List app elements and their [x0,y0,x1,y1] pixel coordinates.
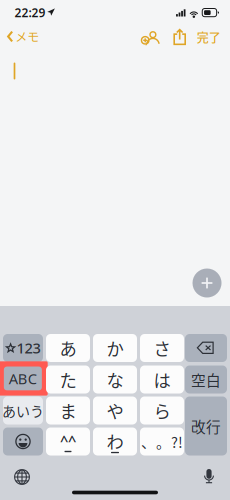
staticText: ABC [9,369,37,388]
button[interactable]: wa [93,427,137,455]
button[interactable]: Share [171,26,189,48]
button[interactable]: さ [140,334,184,362]
button[interactable]: Add attachment [190,266,224,300]
staticText: 、。?! [141,431,183,452]
button[interactable]: Emoji [3,427,43,455]
button[interactable]: あ [46,334,90,362]
staticText: 空白 [191,369,221,390]
staticText: は [153,367,170,392]
staticText: ^^ [60,431,76,450]
button[interactable]: Symbols and numbers [3,334,43,362]
staticText: か [106,335,123,361]
staticText: わ [106,428,123,453]
staticText: 22:29 [14,5,45,20]
button[interactable]: な [93,365,137,393]
staticText: な [106,367,123,392]
staticText: メモ [15,28,39,45]
button[interactable]: Kaomoji [46,427,90,455]
button[interactable]: は [140,365,184,393]
staticText: や [106,398,123,423]
staticText: あいう [2,400,44,421]
button[interactable]: ま [46,396,90,424]
button[interactable]: Delete [185,334,227,362]
staticText: 完了 [197,29,221,46]
staticText: あ [59,335,76,361]
button[interactable]: ABC keyboard [4,367,42,390]
staticText: ら [153,398,170,423]
staticText: 改行 [191,415,221,437]
button[interactable]: Next keyboard [7,464,37,490]
button[interactable]: 、。?! [140,427,184,455]
button[interactable]: メモ [1,23,45,50]
button[interactable]: や [93,396,137,424]
staticText: さ [153,335,170,361]
staticText: ま [59,398,76,423]
staticText: た [59,367,76,392]
button[interactable]: か [93,334,137,362]
button[interactable]: 空白 [185,365,227,393]
button[interactable]: Dictation [194,464,224,490]
button[interactable]: Add people [139,26,161,48]
button[interactable]: 完了 [190,24,228,51]
button[interactable]: 改行 [185,396,227,455]
button[interactable]: た [46,365,90,393]
button[interactable]: ら [140,396,184,424]
staticText: 123 [16,338,40,358]
button[interactable]: Kana keyboard [3,396,43,424]
